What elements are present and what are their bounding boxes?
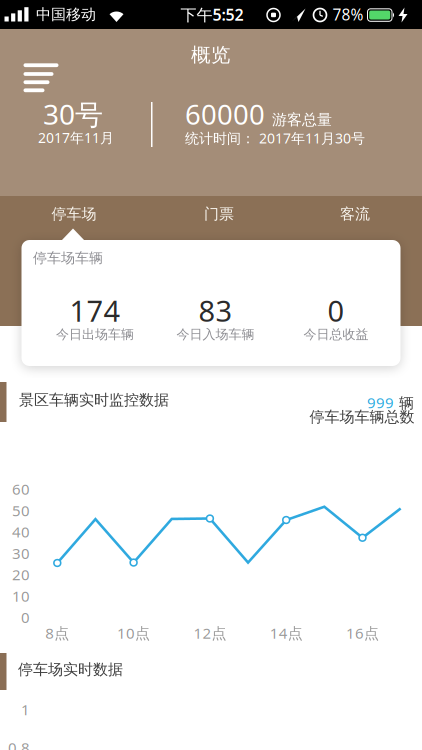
staticText: 客流 (340, 205, 370, 223)
staticText: 游客总量 (272, 110, 332, 129)
staticText: 50 (12, 500, 30, 521)
staticText: 999 (367, 392, 394, 413)
staticText: 下午5:52 (180, 4, 243, 25)
staticText: 今日入场车辆 (176, 326, 254, 343)
staticText: 统计时间： 2017年11月30号 (185, 128, 365, 148)
staticText: 10点 (117, 623, 150, 643)
staticText: 83 (198, 291, 232, 330)
staticText: 30 (12, 543, 30, 563)
staticText: 20 (12, 564, 30, 585)
staticText: 12点 (193, 623, 226, 643)
staticText: 停车场 (51, 205, 96, 223)
staticText: 景区车辆实时监控数据 (19, 391, 169, 409)
staticText: 14点 (270, 623, 303, 643)
staticText: 0.8 (8, 737, 30, 750)
staticText: 60 (12, 479, 30, 499)
staticText: 174 (69, 291, 120, 330)
staticText: 辆 (399, 394, 414, 413)
staticText: 中国移动 (36, 5, 96, 24)
staticText: 40 (12, 521, 30, 542)
staticText: 0 (327, 291, 344, 330)
button[interactable]: 门票 (159, 194, 279, 234)
staticText: 停车场车辆 (33, 249, 103, 267)
button[interactable] (14, 39, 58, 79)
button[interactable]: 停车场 (14, 194, 134, 234)
button[interactable]: 客流 (295, 194, 415, 234)
staticText: 60000 (185, 95, 265, 133)
staticText: 16点 (346, 623, 379, 643)
staticText: 2017年11月 (38, 128, 114, 147)
staticText: 门票 (204, 205, 234, 223)
staticText: 概览 (191, 43, 231, 67)
staticText: 停车场实时数据 (18, 660, 123, 679)
staticText: 今日总收益 (303, 326, 368, 343)
staticText: 8点 (45, 623, 69, 643)
staticText: 今日出场车辆 (56, 326, 134, 343)
staticText: 0 (21, 607, 30, 627)
staticText: 10 (12, 586, 30, 606)
staticText: 78% (332, 4, 363, 25)
staticText: 30号 (43, 95, 103, 133)
staticText: 停车场车辆总数 (309, 408, 414, 426)
staticText: 1 (21, 699, 30, 720)
